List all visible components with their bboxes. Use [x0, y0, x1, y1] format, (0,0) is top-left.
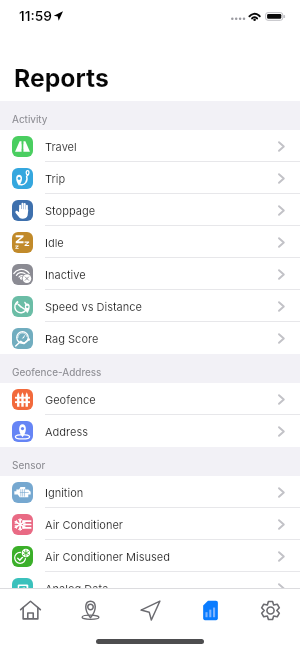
staticText: Analog Data [45, 582, 109, 588]
button[interactable]: Speed vs Distance [0, 290, 300, 322]
staticText: Geofence-Address [12, 366, 102, 378]
staticText: Inactive [45, 268, 86, 281]
button[interactable]: Analog Data [0, 572, 300, 588]
button[interactable]: Home [0, 589, 60, 632]
staticText: Trip [45, 172, 66, 185]
button[interactable]: Inactive [0, 258, 300, 290]
staticText: Travel [45, 140, 77, 153]
button[interactable]: Address [0, 415, 300, 447]
button[interactable]: Air Conditioner [0, 508, 300, 540]
staticText: Reports [14, 63, 109, 93]
staticText: Air Conditioner [45, 518, 123, 531]
button[interactable]: Idle [0, 226, 300, 258]
button[interactable]: Air Conditioner Misused [0, 540, 300, 572]
button[interactable]: Settings [240, 589, 300, 632]
button[interactable]: Navigate [120, 589, 180, 632]
button[interactable]: Travel [0, 130, 300, 162]
staticText: Speed vs Distance [45, 300, 142, 313]
button[interactable]: Reports [180, 589, 240, 632]
staticText: Air Conditioner Misused [45, 550, 170, 563]
staticText: Rag Score [45, 332, 99, 345]
staticText: 11:59 [19, 8, 52, 24]
button[interactable]: Stoppage [0, 194, 300, 226]
staticText: Stoppage [45, 204, 96, 217]
button[interactable]: Geofence [0, 383, 300, 415]
staticText: Ignition [45, 486, 84, 499]
button[interactable]: Rag Score [0, 322, 300, 354]
staticText: Geofence [45, 393, 96, 406]
button[interactable]: Ignition [0, 476, 300, 508]
staticText: Idle [45, 236, 64, 249]
button[interactable]: Trip [0, 162, 300, 194]
staticText: Activity [12, 113, 48, 125]
staticText: Sensor [12, 459, 46, 471]
button[interactable]: Places [60, 589, 120, 632]
staticText: Address [45, 425, 89, 438]
